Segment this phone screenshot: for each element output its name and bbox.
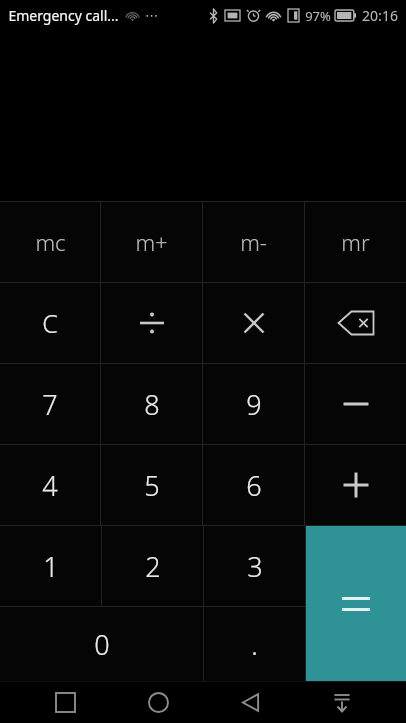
button[interactable]: 3 (204, 526, 305, 606)
button[interactable]: 2 (102, 526, 203, 606)
staticText: ⋯ (145, 8, 158, 23)
staticText: mr (341, 227, 370, 257)
staticText: m- (240, 227, 267, 257)
staticText: 3 (247, 548, 263, 585)
staticText: 6 (246, 467, 262, 504)
staticText: Emergency call... (8, 6, 119, 25)
staticText: 2 (145, 548, 161, 585)
button[interactable]: Recents (37, 682, 93, 723)
button[interactable]: Divide (101, 283, 202, 363)
button[interactable]: Backspace (305, 283, 406, 363)
button[interactable]: 4 (0, 445, 100, 525)
button[interactable]: Back (222, 682, 278, 723)
button[interactable]: m+ (101, 202, 202, 282)
button[interactable]: 8 (101, 364, 202, 444)
button[interactable]: . (204, 607, 305, 681)
staticText: 5 (144, 467, 160, 504)
button[interactable]: Hide navigation bar (314, 682, 370, 723)
other: Equals (342, 594, 370, 614)
button[interactable]: 6 (203, 445, 304, 525)
staticText: 20:16 (362, 6, 398, 25)
staticText: 97% (305, 7, 331, 25)
staticText: 1 (43, 548, 59, 585)
button[interactable]: m- (203, 202, 304, 282)
button[interactable]: 5 (101, 445, 202, 525)
staticText: C (42, 306, 58, 340)
button[interactable]: Home (130, 682, 186, 723)
staticText: mc (35, 227, 66, 257)
button[interactable]: 0 (0, 607, 203, 681)
button[interactable]: mr (305, 202, 406, 282)
button[interactable]: C (0, 283, 100, 363)
staticText: 8 (144, 386, 160, 423)
button[interactable]: 1 (0, 526, 101, 606)
staticText: 0 (94, 626, 110, 663)
staticText: 7 (42, 386, 58, 423)
staticText: . (251, 626, 258, 663)
button[interactable]: Plus (305, 445, 406, 525)
button[interactable]: mc (0, 202, 100, 282)
staticText: 9 (246, 386, 262, 423)
button[interactable]: 7 (0, 364, 100, 444)
button[interactable]: 9 (203, 364, 304, 444)
button[interactable]: Multiply (203, 283, 304, 363)
staticText: 4 (42, 467, 58, 504)
button[interactable]: Minus (305, 364, 406, 444)
staticText: m+ (135, 227, 168, 257)
button[interactable]: Equals (306, 526, 406, 681)
